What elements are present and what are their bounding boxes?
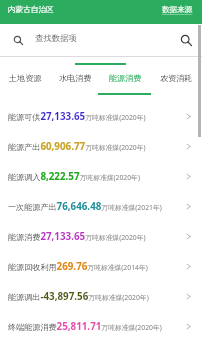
staticText: 能源可供27,133.65万吨标准煤(2020年) — [8, 110, 146, 123]
button[interactable]: Search — [177, 31, 195, 49]
button[interactable]: 能源调入8,222.57万吨标准煤(2020年) — [0, 161, 202, 191]
staticText: 农资消耗 — [160, 73, 193, 83]
button[interactable]: 能源回收利用269.76万吨标准煤(2014年) — [0, 251, 202, 281]
staticText: 水电消费 — [59, 73, 92, 83]
button[interactable]: 能源调出-43,897.56万吨标准煤(2020年) — [0, 281, 202, 311]
staticText: 内蒙古自治区 — [8, 5, 54, 15]
button[interactable]: 能源消费 — [100, 57, 151, 96]
button[interactable]: 能源产出60,906.77万吨标准煤(2020年) — [0, 131, 202, 161]
button[interactable]: 查找数据项 — [14, 35, 177, 46]
button[interactable]: 土地资源 — [0, 57, 50, 96]
staticText: 能源消费 — [109, 73, 142, 83]
button[interactable]: 终端能源消费25,811.71万吨标准煤(2020年) — [0, 311, 202, 341]
staticText: 能源调入8,222.57万吨标准煤(2020年) — [8, 170, 140, 183]
button[interactable]: 数据来源 — [162, 5, 193, 15]
staticText: 能源消费27,133.65万吨标准煤(2020年) — [8, 230, 146, 243]
staticText: 土地资源 — [9, 73, 42, 83]
staticText: 能源产出60,906.77万吨标准煤(2020年) — [8, 140, 146, 153]
staticText: 终端能源消费25,811.71万吨标准煤(2020年) — [8, 320, 162, 333]
staticText: 数据来源 — [162, 5, 193, 15]
staticText: 查找数据项 — [35, 33, 77, 44]
button[interactable]: 农资消耗 — [151, 57, 202, 96]
button[interactable]: 一次能源产出76,646.48万吨标准煤(2021年) — [0, 191, 202, 221]
button[interactable]: 能源消费27,133.65万吨标准煤(2020年) — [0, 221, 202, 251]
button[interactable]: 水电消费 — [50, 57, 100, 96]
staticText: 一次能源产出76,646.48万吨标准煤(2021年) — [8, 200, 162, 213]
button[interactable]: 能源可供27,133.65万吨标准煤(2020年) — [0, 101, 202, 131]
staticText: 能源调出-43,897.56万吨标准煤(2020年) — [8, 290, 149, 303]
staticText: 能源回收利用269.76万吨标准煤(2014年) — [8, 260, 148, 273]
